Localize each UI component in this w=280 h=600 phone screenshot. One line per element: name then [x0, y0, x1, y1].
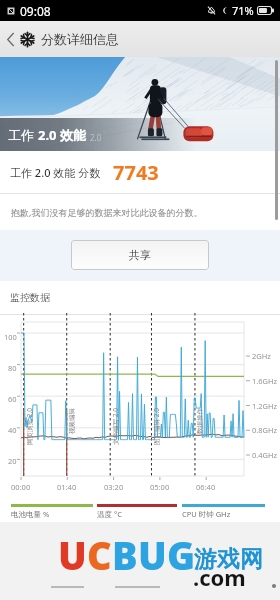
- staticText: 100: [4, 332, 17, 342]
- staticText: 电池电量 %: [11, 509, 50, 519]
- staticText: B: [112, 529, 138, 581]
- staticText: 1.6GHz: [252, 376, 278, 386]
- staticText: C: [87, 529, 112, 581]
- staticText: 监控数据: [10, 291, 50, 304]
- staticText: 40: [8, 425, 17, 435]
- staticText: 视频编辑: [68, 408, 76, 434]
- staticText: 游戏网: [194, 545, 263, 574]
- staticText: 2.0: [90, 132, 102, 143]
- staticText: 03:20: [104, 482, 124, 492]
- button[interactable]: Back: [0, 21, 20, 57]
- staticText: 06:40: [196, 482, 216, 492]
- staticText: 00:00: [11, 482, 31, 492]
- staticText: 71%: [232, 3, 254, 18]
- staticText: 工作: [8, 126, 38, 144]
- staticText: 网页浏览 2.0: [25, 408, 34, 445]
- staticText: 数据操作: [196, 408, 204, 434]
- staticText: 7743: [113, 159, 159, 186]
- staticText: 图片编辑 2.0: [152, 408, 161, 445]
- staticText: 工作 2.0 效能 分数: [10, 165, 101, 180]
- staticText: 20: [8, 456, 17, 466]
- staticText: 文档编写 2.0: [111, 408, 120, 445]
- staticText: U: [138, 529, 167, 581]
- button[interactable]: 共享: [71, 240, 209, 270]
- staticText: 共享: [129, 248, 151, 262]
- staticText: U: [58, 529, 87, 581]
- staticText: 分数详细信息: [41, 31, 119, 47]
- staticText: 0.4GHz: [252, 450, 278, 460]
- staticText: .com: [193, 562, 246, 592]
- staticText: 温度 °C: [97, 509, 122, 519]
- staticText: 09:08: [20, 3, 51, 19]
- staticText: 2GHz: [252, 351, 271, 361]
- staticText: 抱歉,我们没有足够的数据来对比此设备的分数。: [11, 206, 203, 218]
- staticText: 05:00: [150, 482, 170, 492]
- staticText: 0.8GHz: [252, 425, 278, 435]
- staticText: 80: [8, 363, 17, 373]
- staticText: 1.2GHz: [252, 401, 278, 411]
- staticText: CPU 时钟 GHz: [182, 509, 231, 519]
- staticText: G: [167, 529, 196, 581]
- staticText: 60: [8, 394, 17, 404]
- staticText: 2.0 效能: [38, 126, 86, 144]
- staticText: 01:40: [57, 482, 77, 492]
